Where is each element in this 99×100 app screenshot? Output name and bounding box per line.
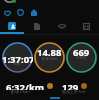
button[interactable]: Like: [1, 8, 14, 17]
button[interactable]: Share: [27, 8, 40, 17]
staticText: 最高上升 (m): [62, 89, 86, 94]
button[interactable]: Tab 4: [74, 21, 99, 31]
button[interactable]: Tab 2: [24, 21, 49, 31]
button[interactable]: Comment: [14, 8, 27, 17]
staticText: 669: [73, 46, 90, 59]
staticText: 卡路里: [76, 56, 87, 61]
button[interactable]: Tab 1: [0, 21, 24, 31]
staticText: 1:37:07: [2, 53, 33, 66]
staticText: 距离 (km): [42, 56, 58, 61]
staticText: 6:32/km: [6, 81, 45, 90]
staticText: 配速 (/km): [11, 89, 30, 94]
staticText: 129: [62, 81, 79, 90]
button[interactable]: Tab 3: [49, 21, 74, 31]
staticText: 时长: [14, 62, 22, 67]
staticText: 14.88: [37, 46, 62, 59]
